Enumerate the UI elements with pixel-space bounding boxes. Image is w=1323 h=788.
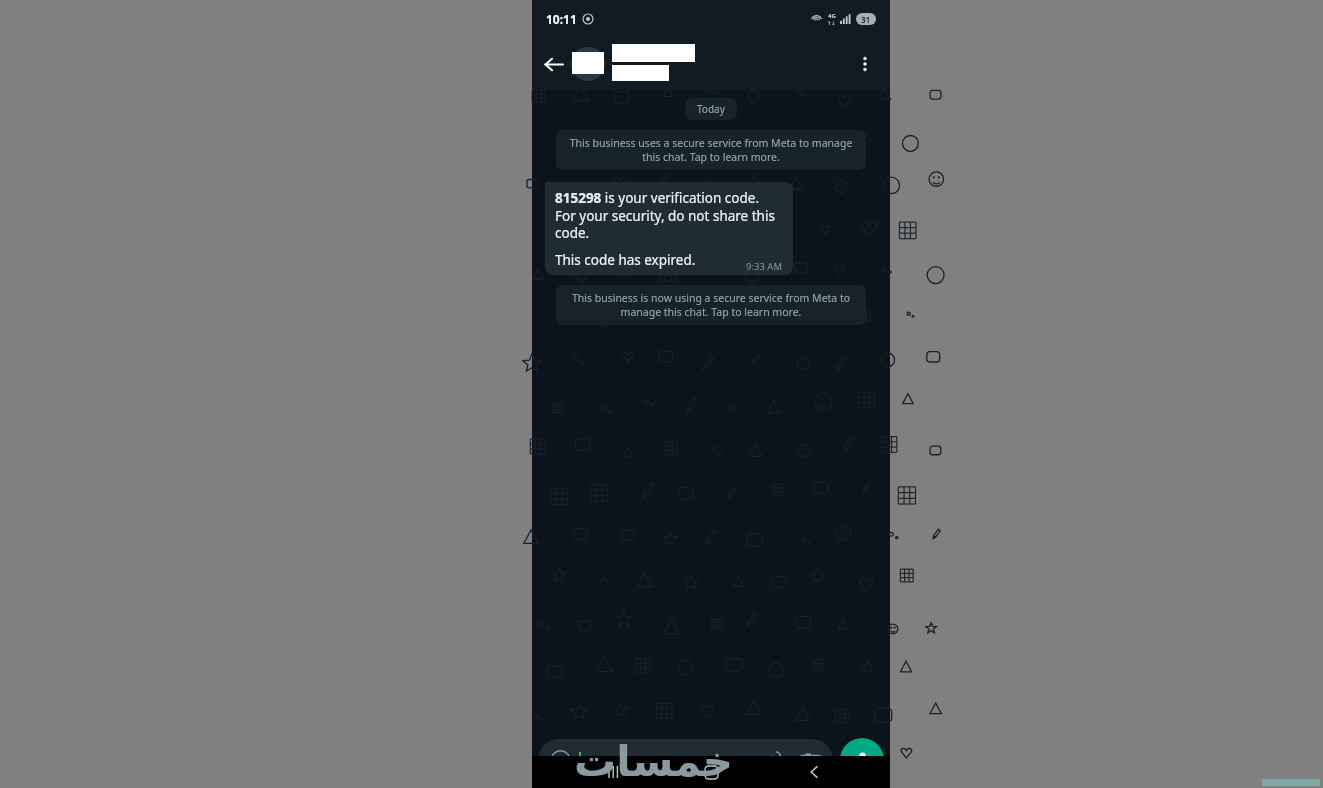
button[interactable]: Emoji (538, 739, 833, 781)
staticText: ↑↓ (827, 20, 836, 26)
button[interactable]: 815298 is your verification code. For yo… (545, 182, 793, 275)
button[interactable]: Attach (766, 750, 786, 770)
button[interactable]: Back (538, 49, 568, 79)
staticText: Today (697, 102, 725, 116)
button[interactable]: Voice message (840, 738, 884, 782)
staticText: This code has expired. (555, 251, 696, 269)
button[interactable]: More options (850, 49, 880, 79)
staticText: 9:33 AM (746, 260, 783, 273)
staticText: 815298 is your verification code. For yo… (555, 189, 783, 242)
staticText: خمسات (574, 737, 734, 786)
button[interactable]: This business uses a secure service from… (556, 130, 866, 170)
button[interactable]: Home (697, 758, 725, 786)
button[interactable]: Today (697, 102, 725, 116)
button[interactable]: This business is now using a secure serv… (556, 285, 866, 325)
button[interactable]: Camera (800, 750, 821, 771)
staticText: 31 (861, 14, 871, 25)
staticText: 10:11 (546, 11, 577, 27)
staticText: This business is now using a secure serv… (568, 291, 854, 319)
button[interactable]: Recents (600, 758, 628, 786)
button[interactable]: Emoji (550, 750, 571, 771)
staticText: Message (585, 751, 644, 770)
staticText: This business uses a secure service from… (568, 136, 854, 164)
staticText: 4G (828, 12, 836, 20)
button[interactable]: Back (800, 758, 828, 786)
